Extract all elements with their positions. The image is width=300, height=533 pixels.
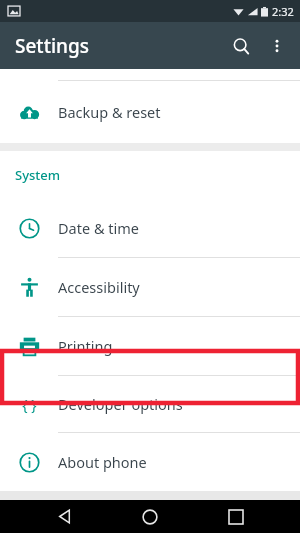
staticText: 2:32 <box>272 4 294 19</box>
button[interactable]: Recent apps <box>214 500 258 533</box>
staticText: Settings <box>15 33 89 59</box>
staticText: Developer options <box>58 394 183 414</box>
staticText: Printing <box>58 336 113 356</box>
button[interactable]: Home <box>128 500 172 533</box>
button[interactable]: { } <box>0 376 300 432</box>
button[interactable]: Date & time <box>0 199 300 257</box>
staticText: { } <box>22 395 37 414</box>
staticText: Date & time <box>58 218 139 238</box>
button[interactable]: Accessibility <box>0 258 300 316</box>
staticText: System <box>15 166 61 184</box>
staticText: About phone <box>58 452 147 472</box>
button[interactable]: More options <box>260 29 294 63</box>
button[interactable]: About phone <box>0 433 300 491</box>
button[interactable]: Backup & reset <box>0 81 300 143</box>
button[interactable]: Search <box>222 27 260 65</box>
staticText: Accessibility <box>58 277 140 297</box>
button[interactable]: Back <box>42 500 86 533</box>
staticText: Backup & reset <box>58 102 161 122</box>
button[interactable]: Printing <box>0 317 300 375</box>
